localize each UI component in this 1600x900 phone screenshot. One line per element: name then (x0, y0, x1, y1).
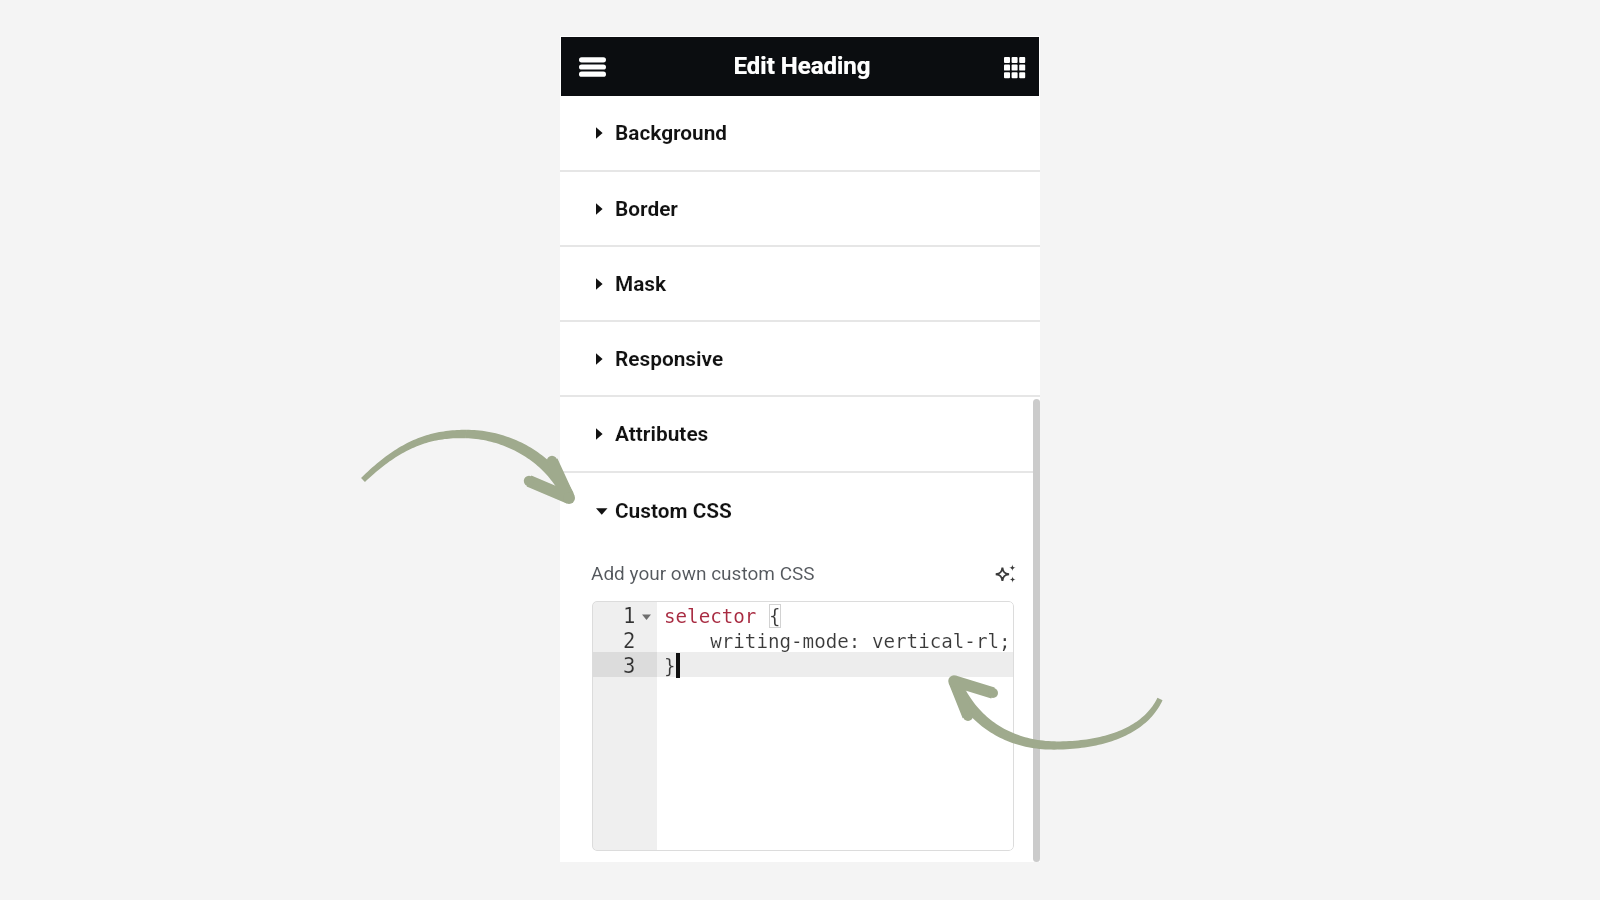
staticText: selector (664, 605, 757, 627)
button[interactable]: Attributes (560, 397, 1040, 473)
staticText: Add your own custom CSS (591, 562, 815, 584)
staticText: Border (615, 197, 678, 221)
staticText: Mask (615, 272, 667, 296)
button[interactable]: Background (560, 96, 1040, 172)
button[interactable]: Custom CSS code editor (592, 601, 1014, 851)
staticText: 3 (623, 654, 636, 678)
staticText: Background (615, 121, 728, 145)
staticText: } (664, 655, 676, 677)
staticText: 1 (623, 604, 636, 628)
staticText: writing-mode: vertical-rl; (664, 630, 1011, 652)
staticText: Attributes (615, 422, 709, 446)
staticText: Custom CSS (615, 499, 732, 523)
button[interactable]: Custom CSS (560, 473, 1040, 548)
staticText: Responsive (615, 347, 724, 371)
staticText: Edit Heading (733, 52, 871, 80)
staticText: { (769, 605, 781, 627)
button[interactable]: Responsive (560, 322, 1040, 397)
button[interactable]: Generate CSS with AI (991, 558, 1021, 588)
button[interactable]: Apps (988, 41, 1040, 93)
staticText: 2 (623, 629, 636, 653)
button[interactable]: Mask (560, 247, 1040, 322)
button[interactable]: Border (560, 172, 1040, 247)
button[interactable]: Menu (566, 41, 618, 93)
